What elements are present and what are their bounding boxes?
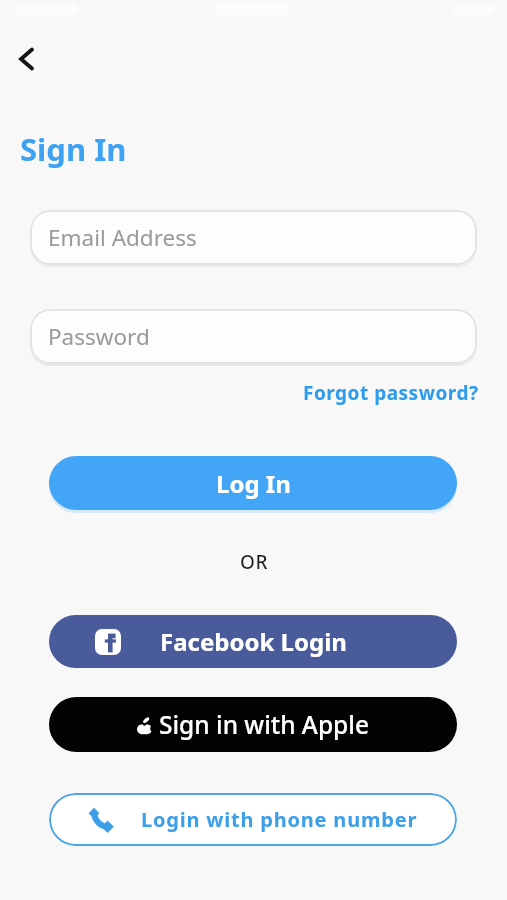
button[interactable]: Login with phone number [49,793,457,846]
button[interactable]: Facebook Login [49,615,457,668]
staticText: OR [240,549,268,575]
staticText: Sign in with Apple [159,708,369,741]
staticText: Forgot password? [303,380,479,406]
staticText: Login with phone number [141,806,418,833]
button[interactable]: Forgot password? [0,380,479,406]
staticText: Password [48,321,150,352]
button[interactable]: Email Address [30,210,477,265]
button[interactable]: Password [30,309,477,364]
button[interactable] [7,38,49,80]
staticText: Email Address [48,222,197,253]
button[interactable]: Sign in with Apple [49,697,457,752]
staticText: Sign In [20,128,127,170]
staticText: Log In [216,467,291,500]
staticText: Facebook Login [160,625,347,658]
button[interactable]: Log In [49,456,457,510]
